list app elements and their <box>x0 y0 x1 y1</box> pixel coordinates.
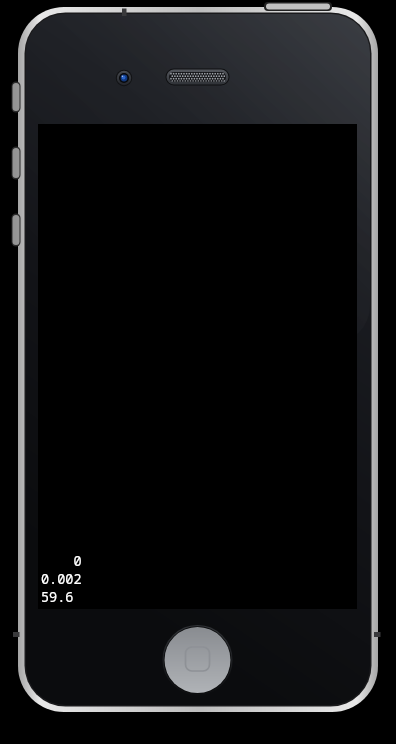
button[interactable]: 0 <box>38 124 357 609</box>
button[interactable]: Home <box>164 627 231 694</box>
staticText: 59.6 <box>41 588 74 606</box>
staticText: 0 <box>41 552 82 570</box>
staticText: 0.002 <box>41 570 82 588</box>
